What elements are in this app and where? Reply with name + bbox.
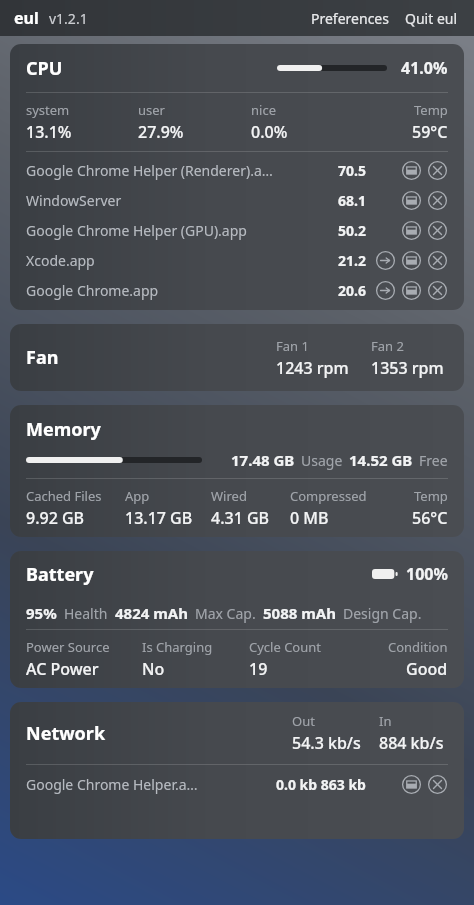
staticText: 1243 rpm xyxy=(276,357,349,379)
staticText: Health xyxy=(64,604,108,623)
button[interactable]: Show window xyxy=(400,159,422,181)
button[interactable]: Activity Monitor xyxy=(374,249,396,271)
button[interactable]: Preferences xyxy=(309,7,391,30)
staticText: v1.2.1 xyxy=(49,9,88,28)
staticText: Max Cap. xyxy=(195,604,256,623)
staticText: 20.6 xyxy=(338,281,366,300)
staticText: 70.5 xyxy=(338,161,366,180)
button[interactable]: Show window xyxy=(400,249,422,271)
staticText: 17.48 GB xyxy=(231,450,295,470)
staticText: No xyxy=(142,658,165,680)
staticText: Power Source xyxy=(26,638,110,656)
button[interactable]: Show window xyxy=(400,189,422,211)
staticText: 54.3 kb/s xyxy=(292,732,361,754)
staticText: Battery xyxy=(26,562,94,587)
button[interactable]: Show window xyxy=(400,279,422,301)
staticText: Temp xyxy=(414,487,448,505)
staticText: Usage xyxy=(301,451,343,470)
staticText: 50.2 xyxy=(338,221,366,240)
button[interactable]: Kill process xyxy=(426,219,448,241)
staticText: Fan 1 xyxy=(276,337,309,355)
button[interactable]: Xcode.app xyxy=(26,245,448,275)
button[interactable]: Kill process xyxy=(426,279,448,301)
staticText: Google Chrome Helper (GPU).app xyxy=(26,221,314,240)
staticText: Out xyxy=(292,712,315,730)
button[interactable]: Kill process xyxy=(426,189,448,211)
staticText: Fan 2 xyxy=(371,337,404,355)
staticText: 4.31 GB xyxy=(211,507,270,529)
staticText: 13.17 GB xyxy=(125,507,193,529)
staticText: Google Chrome Helper.a… xyxy=(26,775,256,794)
staticText: user xyxy=(138,101,165,119)
staticText: 95% xyxy=(26,603,57,623)
staticText: 0 MB xyxy=(290,507,329,529)
staticText: Google Chrome Helper (Renderer).a… xyxy=(26,161,314,180)
staticText: 13.1% xyxy=(26,121,72,143)
staticText: 0.0 kb 863 kb xyxy=(276,775,366,794)
staticText: 56°C xyxy=(412,507,448,529)
staticText: 14.52 GB xyxy=(349,450,413,470)
staticText: eul xyxy=(14,7,39,29)
staticText: Design Cap. xyxy=(343,604,422,623)
staticText: Cycle Count xyxy=(249,638,321,656)
staticText: 1353 rpm xyxy=(371,357,444,379)
button[interactable]: Kill process xyxy=(426,249,448,271)
button[interactable]: Kill process xyxy=(426,159,448,181)
staticText: Quit eul xyxy=(405,9,458,28)
staticText: 19 xyxy=(249,658,268,680)
staticText: Free xyxy=(419,451,448,470)
staticText: 68.1 xyxy=(338,191,366,210)
button[interactable]: Show window xyxy=(400,219,422,241)
staticText: AC Power xyxy=(26,658,99,680)
button[interactable]: Kill process xyxy=(426,773,448,795)
staticText: 100% xyxy=(406,563,448,585)
staticText: 884 kb/s xyxy=(379,732,444,754)
staticText: Cached Files xyxy=(26,487,102,505)
staticText: 21.2 xyxy=(338,251,366,270)
staticText: nice xyxy=(251,101,276,119)
staticText: Xcode.app xyxy=(26,251,314,270)
staticText: Network xyxy=(26,721,106,746)
staticText: Compressed xyxy=(290,487,367,505)
staticText: Is Charging xyxy=(142,638,213,656)
button[interactable]: Activity Monitor xyxy=(374,279,396,301)
staticText: 5088 mAh xyxy=(263,603,336,623)
staticText: App xyxy=(125,487,150,505)
button[interactable]: Show window xyxy=(400,773,422,795)
staticText: Preferences xyxy=(311,9,389,28)
staticText: Google Chrome.app xyxy=(26,281,314,300)
button[interactable]: Google Chrome Helper.a… xyxy=(26,769,448,799)
button[interactable]: Google Chrome.app xyxy=(26,275,448,305)
button[interactable]: Quit eul xyxy=(403,7,460,30)
staticText: 0.0% xyxy=(251,121,288,143)
button[interactable]: WindowServer xyxy=(26,185,448,215)
staticText: Wired xyxy=(211,487,247,505)
staticText: 27.9% xyxy=(138,121,184,143)
staticText: 9.92 GB xyxy=(26,507,85,529)
staticText: CPU xyxy=(26,56,63,81)
staticText: 41.0% xyxy=(401,57,448,79)
staticText: Condition xyxy=(388,638,448,656)
staticText: In xyxy=(379,712,392,730)
staticText: Memory xyxy=(26,417,101,442)
staticText: 4824 mAh xyxy=(115,603,188,623)
staticText: Good xyxy=(406,658,448,680)
staticText: Fan xyxy=(26,345,59,370)
staticText: system xyxy=(26,101,70,119)
staticText: WindowServer xyxy=(26,191,314,210)
staticText: 59°C xyxy=(412,121,448,143)
button[interactable]: Google Chrome Helper (Renderer).a… xyxy=(26,155,448,185)
staticText: Temp xyxy=(414,101,448,119)
button[interactable]: Google Chrome Helper (GPU).app xyxy=(26,215,448,245)
